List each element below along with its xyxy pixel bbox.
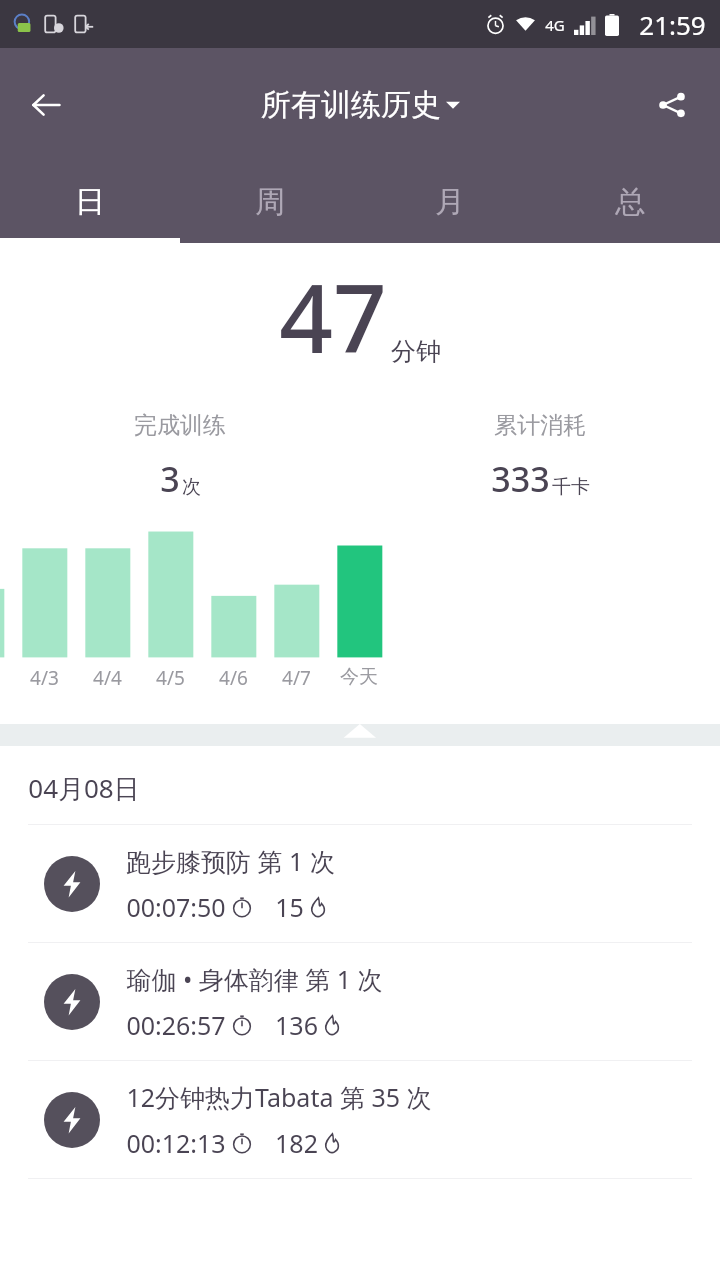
staticText: 今天 <box>340 665 378 689</box>
button[interactable]: 周 <box>180 161 360 243</box>
staticText: 00:26:57 <box>126 1008 226 1042</box>
staticText: 136 <box>275 1008 318 1042</box>
button[interactable]: 所有训练历史 <box>251 80 470 130</box>
staticText: 总 <box>615 183 645 221</box>
button[interactable]: 12分钟热力Tabata 第 35 次 <box>0 1061 720 1178</box>
staticText: 47 <box>279 253 387 381</box>
staticText: 完成训练 <box>134 411 226 440</box>
staticText: 15 <box>275 890 304 924</box>
button[interactable]: Back <box>14 73 78 137</box>
staticText: 分钟 <box>391 336 441 367</box>
staticText: 日 <box>75 183 105 221</box>
staticText: 4/6 <box>219 665 248 691</box>
staticText: 04月08日 <box>28 770 140 806</box>
staticText: 182 <box>275 1126 318 1160</box>
button[interactable]: Share <box>640 73 704 137</box>
staticText: 333 <box>491 456 550 502</box>
button[interactable]: 日 <box>0 161 180 243</box>
staticText: 3 <box>160 456 180 502</box>
staticText: 所有训练历史 <box>261 86 441 124</box>
button[interactable]: 跑步膝预防 第 1 次 <box>0 825 720 942</box>
staticText: 21:59 <box>639 7 706 42</box>
button[interactable]: 月 <box>360 161 540 243</box>
staticText: 次 <box>182 475 201 499</box>
staticText: 累计消耗 <box>494 411 586 440</box>
staticText: 00:12:13 <box>126 1126 226 1160</box>
staticText: 4/4 <box>93 665 122 691</box>
staticText: 00:07:50 <box>126 890 226 924</box>
staticText: 12分钟热力Tabata 第 35 次 <box>126 1080 432 1114</box>
staticText: 4G <box>545 15 565 35</box>
staticText: 跑步膝预防 第 1 次 <box>126 844 335 878</box>
staticText: 月 <box>435 183 465 221</box>
staticText: 4/3 <box>30 665 59 691</box>
button[interactable]: 总 <box>540 161 720 243</box>
staticText: 千卡 <box>552 475 590 499</box>
staticText: 周 <box>255 183 285 221</box>
button[interactable]: 瑜伽 • 身体韵律 第 1 次 <box>0 943 720 1060</box>
staticText: 4/7 <box>282 665 311 691</box>
staticText: 瑜伽 • 身体韵律 第 1 次 <box>126 962 383 996</box>
staticText: 4/5 <box>156 665 185 691</box>
